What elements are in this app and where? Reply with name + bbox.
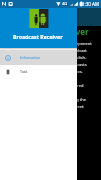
staticText: Broadcast Receiver [0,26,101,37]
staticText: A broadcast receiver is an Android compo… [5,41,92,110]
staticText: Information [20,55,41,60]
staticText: 4G [62,1,68,6]
staticText: Broadcast Receiver [13,33,63,40]
staticText: 1:30 AM [82,1,100,7]
button[interactable]: Information [0,50,77,65]
button[interactable]: Task [0,64,77,79]
staticText: Task [20,69,28,74]
